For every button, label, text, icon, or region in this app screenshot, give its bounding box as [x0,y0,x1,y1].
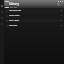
staticText: Late Night [9,19,19,22]
button[interactable]: Back [5,3,8,6]
staticText: Discover [9,24,18,27]
button[interactable]: Discover [5,24,63,27]
button[interactable]: More options [60,3,63,6]
button[interactable]: Home [0,4,4,8]
button[interactable]: Saved [14,7,17,8]
button[interactable]: Settings [0,22,4,26]
button[interactable]: Morning Mix [5,9,63,12]
button[interactable]: Recent [10,7,13,8]
staticText: Library [9,2,20,6]
button[interactable]: Library [0,16,4,20]
button[interactable]: Search [57,3,60,6]
button[interactable]: All [5,7,9,8]
staticText: Morning Mix [9,9,22,12]
button[interactable]: Search [0,10,4,14]
button[interactable]: Focus Flow [5,14,63,17]
button[interactable]: Late Night [5,19,63,22]
staticText: Focus Flow [9,14,20,17]
